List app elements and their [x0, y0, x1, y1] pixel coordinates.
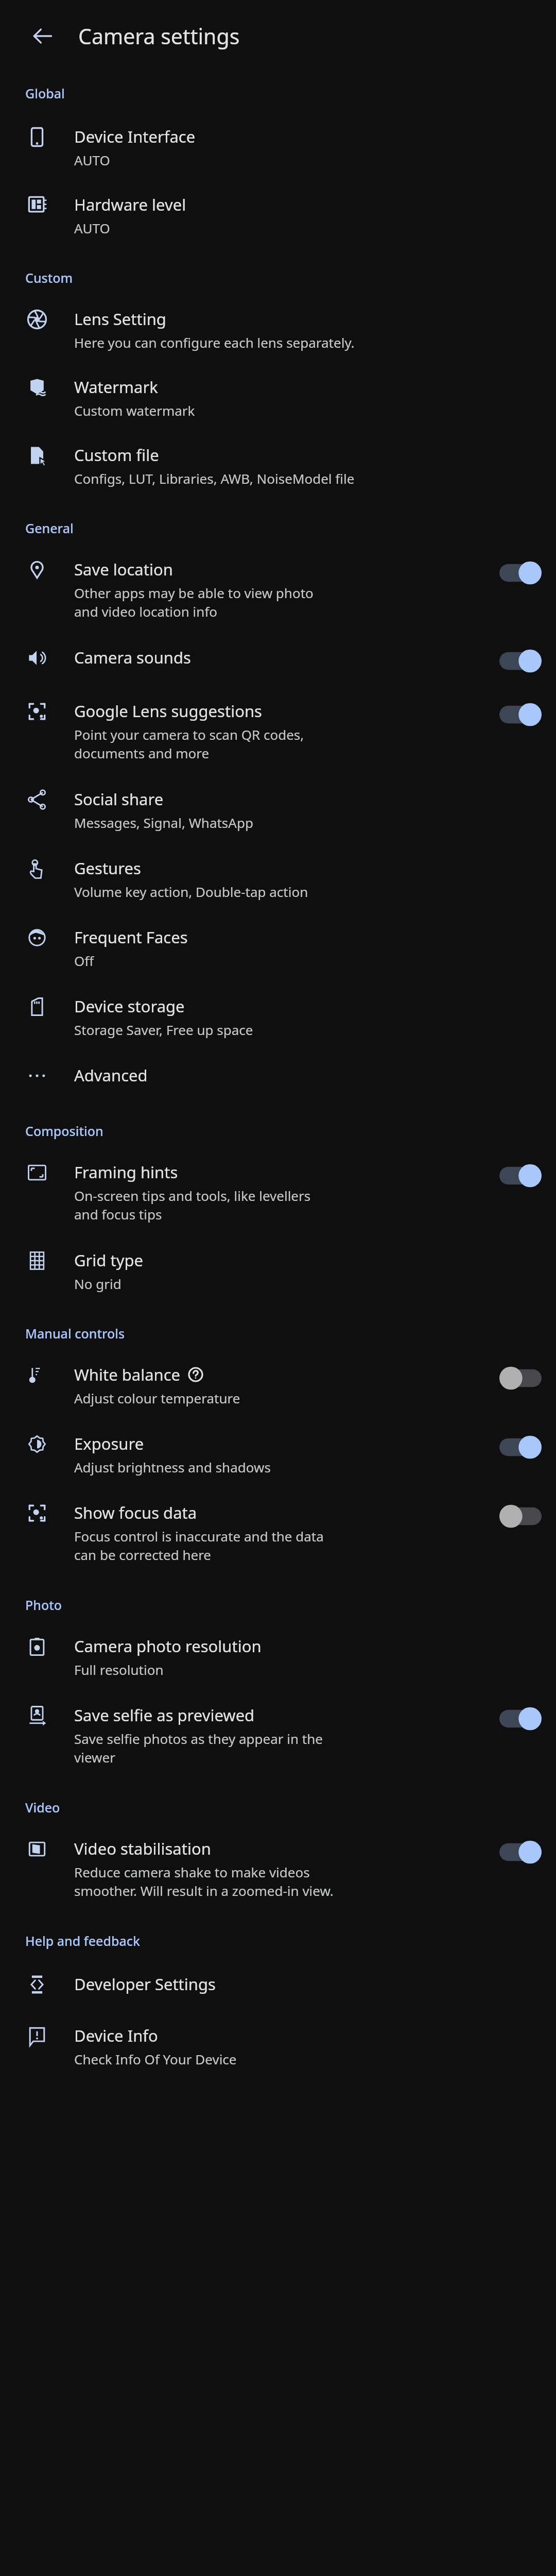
- button[interactable]: Save selfie as previewed: [0, 1679, 556, 1767]
- staticText: Check Info Of Your Device: [74, 2050, 237, 2068]
- button[interactable]: Toggle off: [499, 1503, 542, 1530]
- button[interactable]: Lens Setting: [0, 286, 556, 351]
- button[interactable]: Video stabilisation: [0, 1816, 556, 1900]
- staticText: Social share: [74, 788, 164, 810]
- button[interactable]: Developer Settings: [0, 1950, 556, 1999]
- staticText: Adjust brightness and shadows: [74, 1458, 271, 1476]
- button[interactable]: Device Interface: [0, 102, 556, 169]
- staticText: AUTO: [74, 219, 110, 237]
- button[interactable]: Back: [21, 14, 65, 58]
- staticText: Focus control is inaccurate and the data…: [74, 1527, 324, 1564]
- button[interactable]: Camera sounds: [0, 621, 556, 674]
- staticText: Adjust colour temperature: [74, 1389, 240, 1407]
- staticText: Watermark: [74, 376, 158, 398]
- button[interactable]: Gestures: [0, 832, 556, 901]
- button[interactable]: Save location: [0, 537, 556, 621]
- staticText: Camera sounds: [74, 647, 191, 668]
- staticText: Device storage: [74, 995, 185, 1017]
- staticText: Developer Settings: [74, 1973, 216, 1995]
- staticText: Exposure: [74, 1433, 144, 1454]
- button[interactable]: Toggle on: [499, 648, 542, 674]
- staticText: Custom: [25, 269, 73, 286]
- button[interactable]: Toggle on: [499, 560, 542, 586]
- staticText: Full resolution: [74, 1660, 164, 1679]
- staticText: Show focus data: [74, 1502, 197, 1523]
- staticText: No grid: [74, 1275, 121, 1293]
- staticText: On-screen tips and tools, like levellers…: [74, 1187, 311, 1224]
- staticText: Advanced: [74, 1064, 148, 1086]
- staticText: Save selfie as previewed: [74, 1704, 255, 1726]
- staticText: Grid type: [74, 1249, 144, 1271]
- staticText: Video: [25, 1799, 60, 1816]
- button[interactable]: Watermark: [0, 351, 556, 419]
- staticText: Save location: [74, 558, 173, 580]
- button[interactable]: Advanced: [0, 1039, 556, 1090]
- staticText: Help and feedback: [25, 1932, 140, 1950]
- staticText: Photo: [25, 1596, 62, 1614]
- staticText: Video stabilisation: [74, 1838, 211, 1859]
- staticText: Frequent Faces: [74, 926, 188, 948]
- staticText: Storage Saver, Free up space: [74, 1021, 253, 1039]
- button[interactable]: Toggle off: [499, 1365, 542, 1392]
- staticText: Configs, LUT, Libraries, AWB, NoiseModel…: [74, 469, 355, 487]
- staticText: AUTO: [74, 151, 110, 169]
- staticText: White balance: [74, 1364, 181, 1385]
- staticText: Hardware level: [74, 194, 186, 215]
- staticText: Global: [25, 84, 65, 102]
- button[interactable]: Framing hints: [0, 1140, 556, 1224]
- staticText: Manual controls: [25, 1325, 125, 1342]
- staticText: Point your camera to scan QR codes, docu…: [74, 725, 304, 762]
- staticText: Volume key action, Double-tap action: [74, 883, 308, 901]
- button[interactable]: Social share: [0, 762, 556, 832]
- button[interactable]: Toggle on: [499, 1162, 542, 1189]
- staticText: Gestures: [74, 857, 141, 879]
- button[interactable]: Toggle on: [499, 1839, 542, 1866]
- staticText: Messages, Signal, WhatsApp: [74, 814, 253, 832]
- button[interactable]: White balance: [0, 1342, 556, 1407]
- staticText: Lens Setting: [74, 308, 166, 330]
- staticText: Reduce camera shake to make videos smoot…: [74, 1863, 334, 1900]
- staticText: Camera photo resolution: [74, 1635, 262, 1657]
- button[interactable]: Show focus data: [0, 1476, 556, 1564]
- button[interactable]: Toggle on: [499, 1434, 542, 1461]
- button[interactable]: Toggle on: [499, 701, 542, 728]
- staticText: Custom file: [74, 444, 159, 466]
- staticText: Camera settings: [78, 22, 240, 50]
- button[interactable]: Device Info: [0, 1999, 556, 2068]
- staticText: Custom watermark: [74, 401, 195, 419]
- staticText: Save selfie photos as they appear in the…: [74, 1730, 323, 1767]
- button[interactable]: Camera photo resolution: [0, 1614, 556, 1679]
- button[interactable]: Frequent Faces: [0, 901, 556, 970]
- staticText: Device Interface: [74, 126, 196, 147]
- button[interactable]: Google Lens suggestions: [0, 674, 556, 762]
- button[interactable]: Device storage: [0, 970, 556, 1039]
- staticText: Composition: [25, 1122, 103, 1140]
- staticText: Here you can configure each lens separat…: [74, 333, 355, 351]
- button[interactable]: Custom file: [0, 419, 556, 487]
- button[interactable]: Grid type: [0, 1224, 556, 1293]
- staticText: General: [25, 519, 74, 537]
- staticText: Framing hints: [74, 1161, 178, 1183]
- staticText: Device Info: [74, 2025, 158, 2046]
- staticText: Off: [74, 952, 94, 970]
- staticText: Other apps may be able to view photo and…: [74, 584, 314, 621]
- button[interactable]: Toggle on: [499, 1705, 542, 1732]
- staticText: Google Lens suggestions: [74, 700, 262, 722]
- button[interactable]: Exposure: [0, 1407, 556, 1476]
- button[interactable]: Hardware level: [0, 169, 556, 237]
